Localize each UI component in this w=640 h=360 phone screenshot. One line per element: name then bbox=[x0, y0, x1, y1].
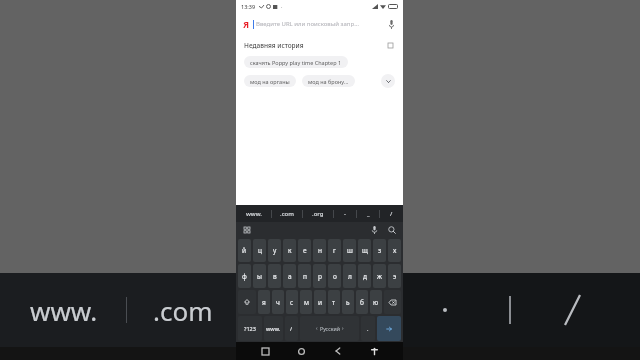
button[interactable]: т bbox=[328, 290, 340, 314]
button[interactable]: ц bbox=[253, 239, 266, 262]
button[interactable]: - bbox=[334, 205, 356, 222]
button[interactable]: р bbox=[313, 264, 326, 288]
staticText: · bbox=[281, 3, 283, 10]
button[interactable]: www. bbox=[236, 205, 271, 222]
staticText: т bbox=[332, 298, 336, 307]
button[interactable]: ы bbox=[253, 264, 266, 288]
button[interactable]: скачять Poppy play time Chapteр 1 bbox=[244, 56, 348, 68]
staticText: www. bbox=[266, 325, 281, 332]
button[interactable]: ю bbox=[370, 290, 382, 314]
staticText: ь bbox=[346, 298, 350, 307]
staticText: о bbox=[333, 272, 337, 281]
button[interactable]: .com bbox=[272, 205, 302, 222]
button[interactable]: м bbox=[300, 290, 312, 314]
button[interactable]: х bbox=[388, 239, 401, 262]
staticText: › bbox=[342, 325, 344, 332]
button[interactable]: ж bbox=[373, 264, 386, 288]
staticText: й bbox=[242, 246, 247, 255]
staticText: з bbox=[378, 246, 382, 255]
button[interactable]: з bbox=[373, 239, 386, 262]
button[interactable]: мод на органы bbox=[244, 75, 296, 87]
button[interactable]: Hide keyboard bbox=[366, 343, 382, 359]
staticText: ы bbox=[257, 272, 262, 281]
button[interactable]: о bbox=[328, 264, 341, 288]
staticText: скачять Poppy play time Chapteр 1 bbox=[250, 59, 342, 66]
button[interactable]: Back bbox=[330, 343, 346, 359]
staticText: д bbox=[363, 272, 367, 281]
staticText: п bbox=[303, 272, 307, 281]
button[interactable]: в bbox=[268, 264, 281, 288]
button[interactable]: ш bbox=[343, 239, 356, 262]
button[interactable]: .org bbox=[303, 205, 333, 222]
staticText: .org bbox=[312, 210, 324, 218]
button[interactable]: и bbox=[314, 290, 326, 314]
staticText: н bbox=[318, 246, 322, 255]
staticText: .com bbox=[153, 293, 213, 328]
button[interactable]: д bbox=[358, 264, 371, 288]
button[interactable]: Go bbox=[377, 316, 401, 341]
button[interactable]: э bbox=[388, 264, 401, 288]
button[interactable]: Я bbox=[242, 13, 397, 35]
button[interactable]: к bbox=[283, 239, 296, 262]
button[interactable]: щ bbox=[358, 239, 371, 262]
button[interactable]: Voice search bbox=[385, 18, 397, 30]
staticText: мод на брону… bbox=[308, 78, 349, 85]
button[interactable]: Clear history bbox=[385, 40, 395, 50]
button[interactable]: / bbox=[380, 205, 403, 222]
staticText: _ bbox=[367, 210, 370, 218]
button[interactable]: _ bbox=[357, 205, 379, 222]
button[interactable]: . bbox=[361, 316, 375, 341]
button[interactable]: ч bbox=[272, 290, 284, 314]
button[interactable]: Voice input bbox=[368, 224, 380, 236]
staticText: у bbox=[273, 246, 277, 255]
button[interactable]: а bbox=[283, 264, 296, 288]
staticText: / bbox=[390, 210, 393, 218]
button[interactable]: у bbox=[268, 239, 281, 262]
button[interactable]: ?123 bbox=[238, 316, 262, 341]
button[interactable]: Recents bbox=[257, 343, 273, 359]
button[interactable]: ь bbox=[342, 290, 354, 314]
staticText: ц bbox=[258, 246, 262, 255]
staticText: и bbox=[318, 298, 323, 307]
staticText: Недавняя история bbox=[244, 41, 304, 50]
staticText: ф bbox=[242, 272, 247, 281]
button[interactable]: мод на брону… bbox=[302, 75, 355, 87]
staticText: / bbox=[290, 325, 293, 332]
button[interactable]: б bbox=[356, 290, 368, 314]
staticText: м bbox=[304, 298, 309, 307]
button[interactable]: п bbox=[298, 264, 311, 288]
staticText: . bbox=[367, 325, 369, 332]
button[interactable]: Home bbox=[293, 343, 309, 359]
staticText: с bbox=[290, 298, 294, 307]
button[interactable]: Backspace bbox=[384, 290, 401, 314]
staticText: щ bbox=[362, 246, 368, 255]
button[interactable]: www. bbox=[264, 316, 283, 341]
button[interactable]: Search bbox=[386, 224, 398, 236]
button[interactable]: Sticker keyboard bbox=[241, 224, 253, 236]
staticText: г bbox=[333, 246, 336, 255]
staticText: Русский bbox=[320, 325, 340, 332]
staticText: ж bbox=[377, 272, 382, 281]
button[interactable]: Shift bbox=[238, 290, 256, 314]
button[interactable]: Expand bbox=[381, 74, 395, 88]
button[interactable]: л bbox=[343, 264, 356, 288]
staticText: ч bbox=[276, 298, 280, 307]
staticText: я bbox=[262, 298, 266, 307]
button[interactable]: е bbox=[298, 239, 311, 262]
button[interactable]: й bbox=[238, 239, 251, 262]
staticText: ш bbox=[347, 246, 353, 255]
button[interactable]: г bbox=[328, 239, 341, 262]
staticText: л bbox=[348, 272, 352, 281]
staticText: www. bbox=[246, 210, 262, 218]
staticText: в bbox=[273, 272, 277, 281]
button[interactable]: я bbox=[258, 290, 270, 314]
button[interactable]: ф bbox=[238, 264, 251, 288]
button[interactable]: н bbox=[313, 239, 326, 262]
staticText: ?123 bbox=[244, 325, 256, 332]
staticText: мод на органы bbox=[250, 78, 290, 85]
button[interactable]: Space, Russian bbox=[300, 316, 359, 341]
staticText: .com bbox=[280, 210, 294, 218]
button[interactable]: с bbox=[286, 290, 298, 314]
staticText: е bbox=[303, 246, 307, 255]
button[interactable]: / bbox=[285, 316, 298, 341]
